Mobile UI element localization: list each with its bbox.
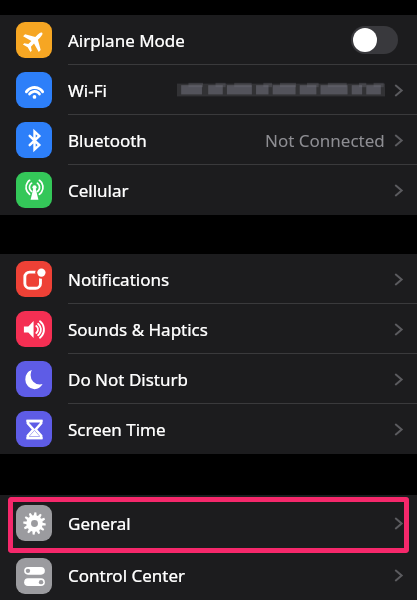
button[interactable]: Do Not Disturb <box>0 354 417 404</box>
button[interactable]: Airplane Mode <box>0 15 417 65</box>
staticText: General <box>68 512 131 535</box>
staticText: Cellular <box>68 179 129 202</box>
button[interactable]: Screen Time <box>0 404 417 454</box>
staticText: Bluetooth <box>68 129 147 152</box>
button[interactable]: General <box>0 495 417 551</box>
staticText: Do Not Disturb <box>68 368 188 391</box>
staticText: Sounds & Haptics <box>68 318 208 341</box>
button[interactable]: Airplane Mode toggle <box>351 26 398 54</box>
staticText: Control Center <box>68 564 186 587</box>
button[interactable]: Cellular <box>0 165 417 215</box>
staticText: Not Connected <box>265 129 385 152</box>
button[interactable]: Notifications <box>0 254 417 304</box>
staticText: Screen Time <box>68 418 166 441</box>
staticText: Notifications <box>68 268 170 291</box>
button[interactable]: Control Center <box>0 551 417 600</box>
staticText: Wi-Fi <box>68 79 107 102</box>
button[interactable]: Sounds & Haptics <box>0 304 417 354</box>
button[interactable]: Wi-Fi <box>0 65 417 115</box>
button[interactable]: Bluetooth <box>0 115 417 165</box>
staticText: Airplane Mode <box>68 29 185 52</box>
